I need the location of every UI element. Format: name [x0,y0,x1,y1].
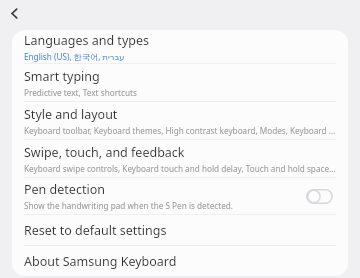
staticText: Pen detection [24,181,105,198]
button[interactable]: Style and layout [12,102,348,139]
button[interactable]: Swipe, touch, and feedback [12,140,348,177]
staticText: Smart typing [24,68,100,85]
button[interactable]: Toggle Pen detection [302,185,336,207]
staticText: Show the handwriting pad when the S Pen … [24,200,234,211]
staticText: Swipe, touch, and feedback [24,144,185,161]
staticText: English (US), 한국어, עברית [24,51,125,62]
staticText: Predictive text, Text shortcuts [24,87,137,98]
button[interactable]: Languages and types [12,30,348,63]
staticText: Reset to default settings [24,222,167,239]
button[interactable]: Reset to default settings [12,215,348,245]
staticText: About Samsung Keyboard [24,253,177,270]
staticText: Keyboard toolbar, Keyboard themes, High … [24,125,336,136]
button[interactable]: About Samsung Keyboard [12,246,348,276]
button[interactable]: Navigate up [1,0,27,26]
staticText: Keyboard swipe controls, Keyboard touch … [24,163,336,174]
staticText: Style and layout [24,106,118,123]
button[interactable]: Smart typing [12,64,348,101]
staticText: Languages and types [24,32,149,49]
button[interactable]: Pen detection [12,178,348,214]
